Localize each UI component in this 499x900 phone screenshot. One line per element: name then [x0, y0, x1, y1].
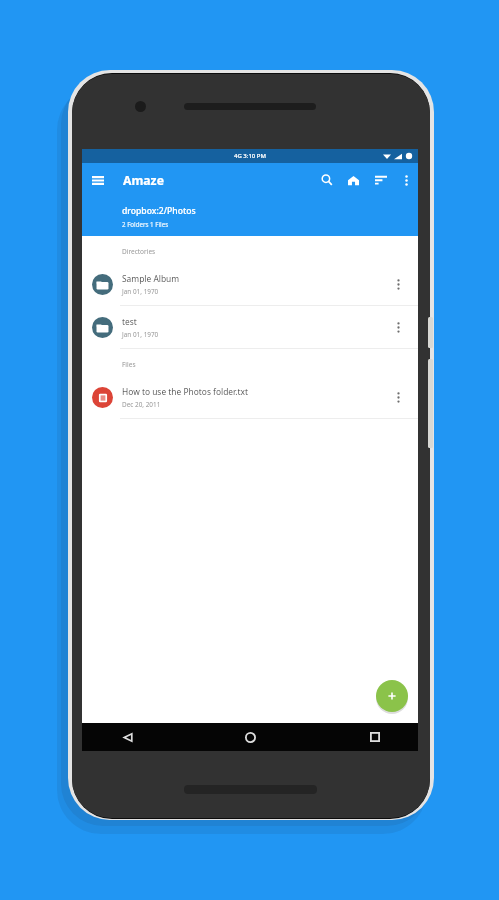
staticText: Dec 20, 2011 — [122, 400, 161, 409]
staticText: Jan 01, 1970 — [122, 330, 159, 339]
staticText: How to use the Photos folder.txt — [122, 386, 248, 397]
button[interactable]: Home — [340, 163, 367, 197]
button[interactable]: Item options — [378, 306, 418, 348]
button[interactable]: Sample Album — [82, 263, 418, 305]
button[interactable]: Item options — [378, 376, 418, 418]
button[interactable]: test — [82, 306, 418, 348]
button[interactable]: How to use the Photos folder.txt — [82, 376, 418, 418]
button[interactable]: Open navigation drawer — [82, 163, 114, 197]
button[interactable]: Recents — [361, 723, 389, 751]
staticText: Jan 01, 1970 — [122, 287, 159, 296]
staticText: Directories — [122, 247, 156, 256]
staticText: Files — [122, 360, 136, 369]
staticText: Amaze — [123, 172, 164, 189]
staticText: Sample Album — [122, 273, 180, 284]
button[interactable]: More options — [394, 163, 418, 197]
staticText: 2 Folders 1 Files — [122, 220, 169, 228]
staticText: dropbox:2/Photos — [122, 205, 196, 217]
button[interactable]: Add — [376, 680, 408, 712]
button[interactable]: Sort — [367, 163, 394, 197]
staticText: test — [122, 316, 137, 327]
button[interactable]: Item options — [378, 263, 418, 305]
staticText: 4G 3:10 PM — [234, 152, 267, 160]
button[interactable]: Back — [114, 723, 142, 751]
button[interactable]: Search — [314, 163, 340, 197]
button[interactable]: Home — [236, 723, 264, 751]
